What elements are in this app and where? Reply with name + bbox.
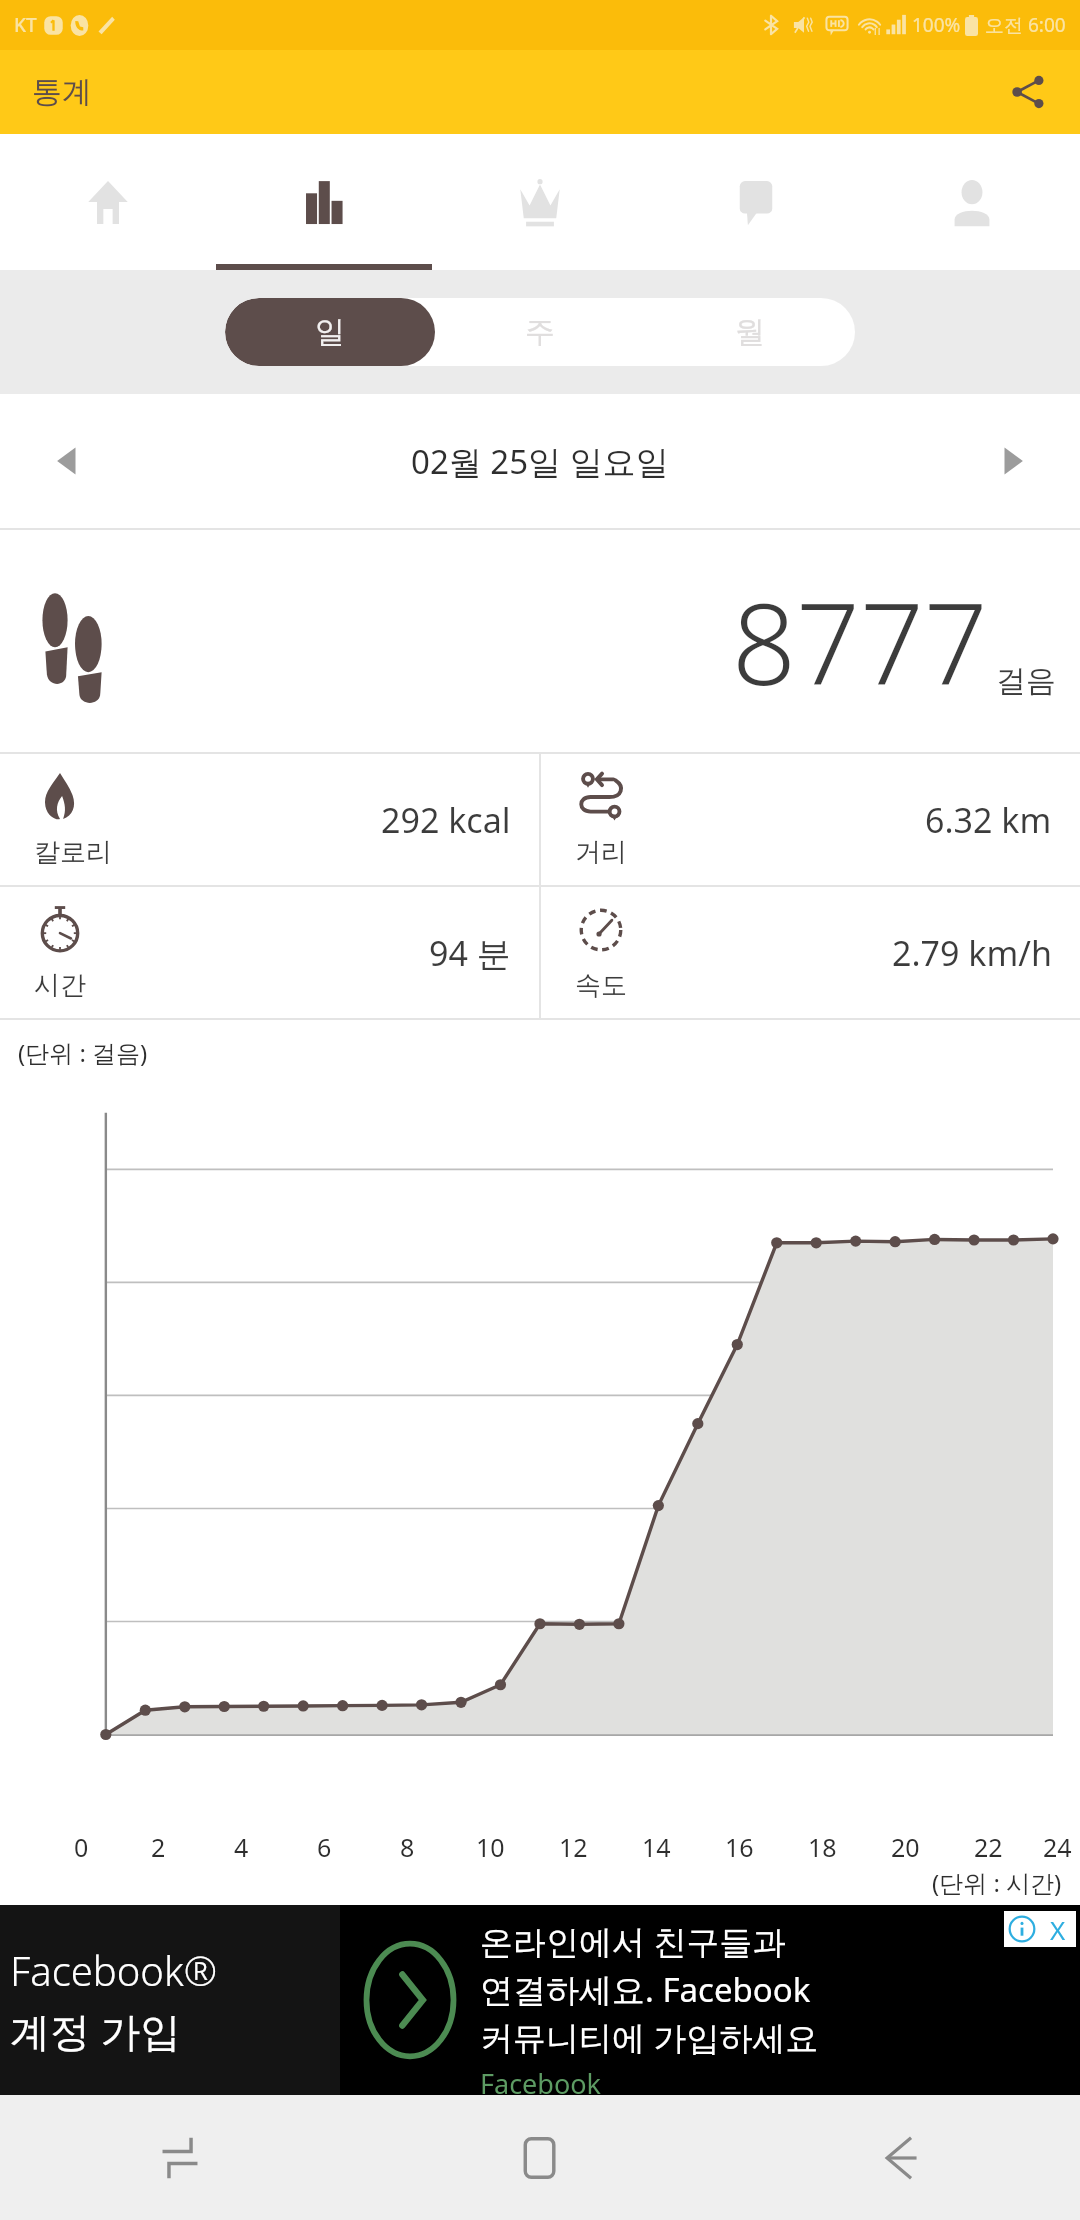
staticText: 2.79 km/h xyxy=(892,930,1052,976)
staticText: (단위 : 시간) xyxy=(932,1866,1062,1899)
button[interactable]: 뒤로 xyxy=(720,2095,1080,2220)
staticText: 14 xyxy=(642,1830,671,1864)
staticText: 100% xyxy=(912,12,961,38)
button[interactable]: 거리 xyxy=(541,754,1080,885)
button[interactable]: 칼로리 xyxy=(0,754,539,885)
staticText: 6 xyxy=(317,1830,332,1864)
button[interactable]: 이전 날짜 xyxy=(34,427,102,495)
staticText: 8777 xyxy=(732,565,988,718)
staticText: 속도 xyxy=(575,969,627,1002)
button[interactable]: 홈 xyxy=(0,134,216,270)
staticText: 월 xyxy=(735,313,765,351)
button[interactable]: 최근 앱 xyxy=(0,2095,360,2220)
staticText: 22 xyxy=(974,1830,1003,1864)
staticText: 16 xyxy=(725,1830,754,1864)
staticText: 커뮤니티에 가입하세요 xyxy=(480,2015,819,2060)
button[interactable]: 다음 날짜 xyxy=(978,427,1046,495)
staticText: 연결하세요. Facebook xyxy=(480,1967,811,2012)
button[interactable]: 시간 xyxy=(0,887,539,1018)
staticText: 0 xyxy=(74,1830,89,1864)
button[interactable]: 주 xyxy=(435,298,645,366)
button[interactable]: 월 xyxy=(645,298,855,366)
staticText: 94 분 xyxy=(429,930,511,976)
button[interactable]: 광고 정보 xyxy=(1004,1911,1040,1947)
button[interactable]: 일 xyxy=(225,298,435,366)
staticText: 칼로리 xyxy=(34,836,112,869)
button[interactable]: 속도 xyxy=(541,887,1080,1018)
staticText: 18 xyxy=(808,1830,837,1864)
staticText: 20 xyxy=(891,1830,920,1864)
staticText: 오전 6:00 xyxy=(985,12,1066,38)
staticText: 일 xyxy=(315,313,345,351)
staticText: 통계 xyxy=(32,73,92,111)
staticText: 시간 xyxy=(34,969,86,1002)
button[interactable]: 광고 닫기 xyxy=(1040,1911,1076,1947)
staticText: 292 kcal xyxy=(381,797,511,843)
staticText: 12 xyxy=(559,1830,588,1864)
button[interactable]: Facebook® xyxy=(0,1905,1080,2095)
staticText: (단위 : 걸음) xyxy=(18,1036,148,1069)
staticText: 6.32 km xyxy=(925,797,1052,843)
staticText: 02월 25일 일요일 xyxy=(411,439,669,484)
button[interactable]: 공유 xyxy=(998,62,1058,122)
staticText: 온라인에서 친구들과 xyxy=(480,1919,786,1964)
staticText: 4 xyxy=(234,1830,249,1864)
button[interactable]: 프로필 xyxy=(864,134,1080,270)
staticText: 10 xyxy=(476,1830,505,1864)
button[interactable]: 홈 xyxy=(360,2095,720,2220)
staticText: 계정 가입 xyxy=(10,2003,181,2058)
staticText: 2 xyxy=(151,1830,166,1864)
button[interactable]: 랭킹 xyxy=(432,134,648,270)
button[interactable]: 커뮤니티 xyxy=(648,134,864,270)
staticText: Facebook® xyxy=(10,1943,217,1997)
staticText: X xyxy=(1050,1912,1066,1947)
staticText: Facebook xyxy=(480,2065,602,2095)
staticText: 주 xyxy=(525,313,555,351)
button[interactable]: 통계 xyxy=(216,134,432,270)
staticText: 걸음 xyxy=(996,662,1056,700)
staticText: 8 xyxy=(400,1830,415,1864)
staticText: 24 xyxy=(1043,1830,1072,1864)
staticText: KT xyxy=(14,12,37,38)
staticText: 거리 xyxy=(575,836,627,869)
